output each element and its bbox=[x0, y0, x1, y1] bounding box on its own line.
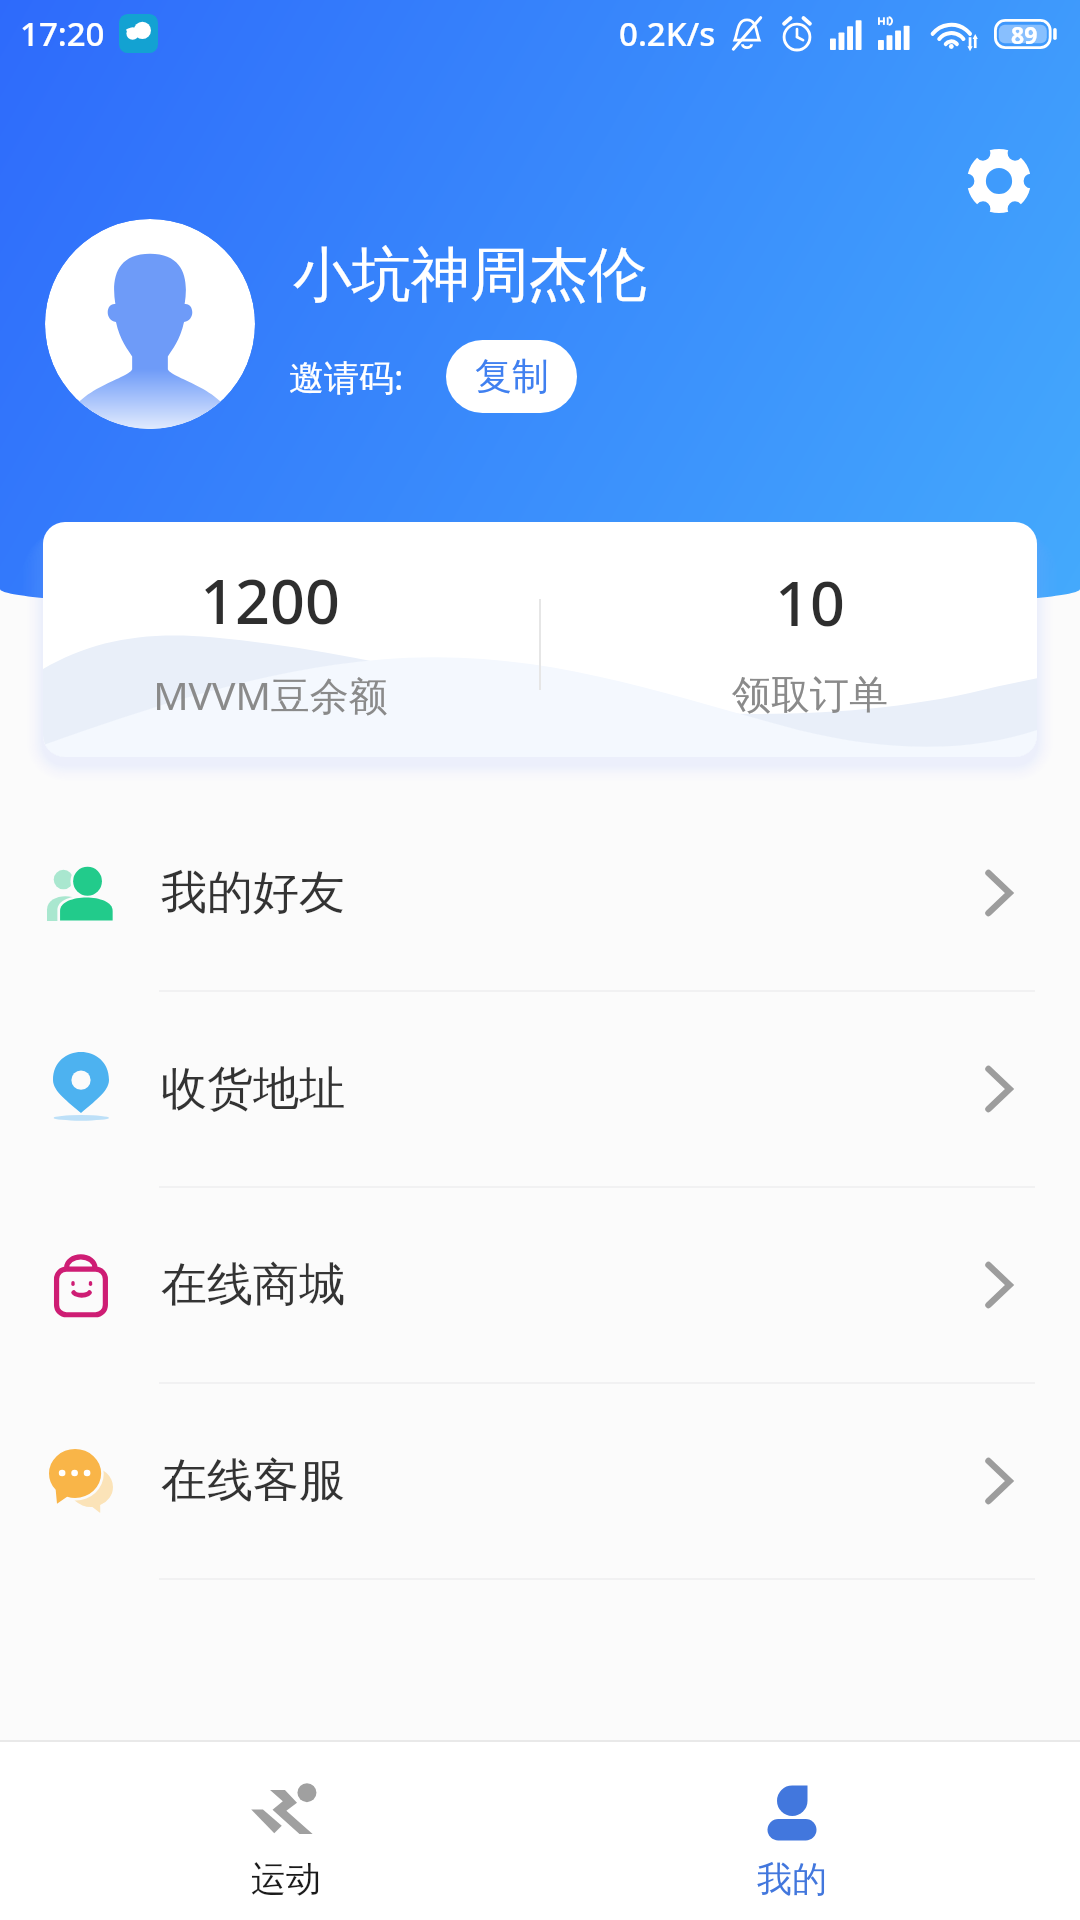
staticText: 复制 bbox=[475, 353, 549, 400]
staticText: 我的 bbox=[757, 1857, 827, 1901]
staticText: 17:20 bbox=[20, 11, 105, 56]
staticText: 运动 bbox=[251, 1857, 321, 1901]
button[interactable]: 运动 bbox=[145, 1740, 426, 1920]
button[interactable]: 10 bbox=[583, 522, 1037, 757]
button[interactable]: 在线商城 bbox=[0, 1188, 1080, 1382]
staticText: 收货地址 bbox=[161, 1060, 345, 1118]
button[interactable]: 我的好友 bbox=[0, 796, 1080, 990]
staticText: 我的好友 bbox=[161, 864, 345, 922]
staticText: 领取订单 bbox=[732, 670, 888, 719]
button[interactable]: Settings bbox=[955, 137, 1043, 225]
staticText: 在线客服 bbox=[161, 1452, 345, 1510]
staticText: 0.2K/s bbox=[619, 11, 716, 56]
button[interactable]: Profile photo bbox=[45, 219, 255, 429]
button[interactable]: 在线客服 bbox=[0, 1384, 1080, 1578]
staticText: MVVM豆余额 bbox=[153, 668, 388, 721]
staticText: 89 bbox=[1011, 19, 1038, 49]
button[interactable]: 收货地址 bbox=[0, 992, 1080, 1186]
staticText: 小坑神周杰伦 bbox=[293, 238, 647, 312]
button[interactable]: 1200 bbox=[43, 522, 497, 757]
button[interactable]: 复制 bbox=[446, 340, 577, 413]
button[interactable]: 我的 bbox=[651, 1740, 932, 1920]
staticText: 在线商城 bbox=[161, 1256, 345, 1314]
staticText: 1200 bbox=[200, 559, 340, 642]
staticText: 邀请码: bbox=[289, 353, 404, 401]
staticText: 10 bbox=[775, 561, 845, 644]
